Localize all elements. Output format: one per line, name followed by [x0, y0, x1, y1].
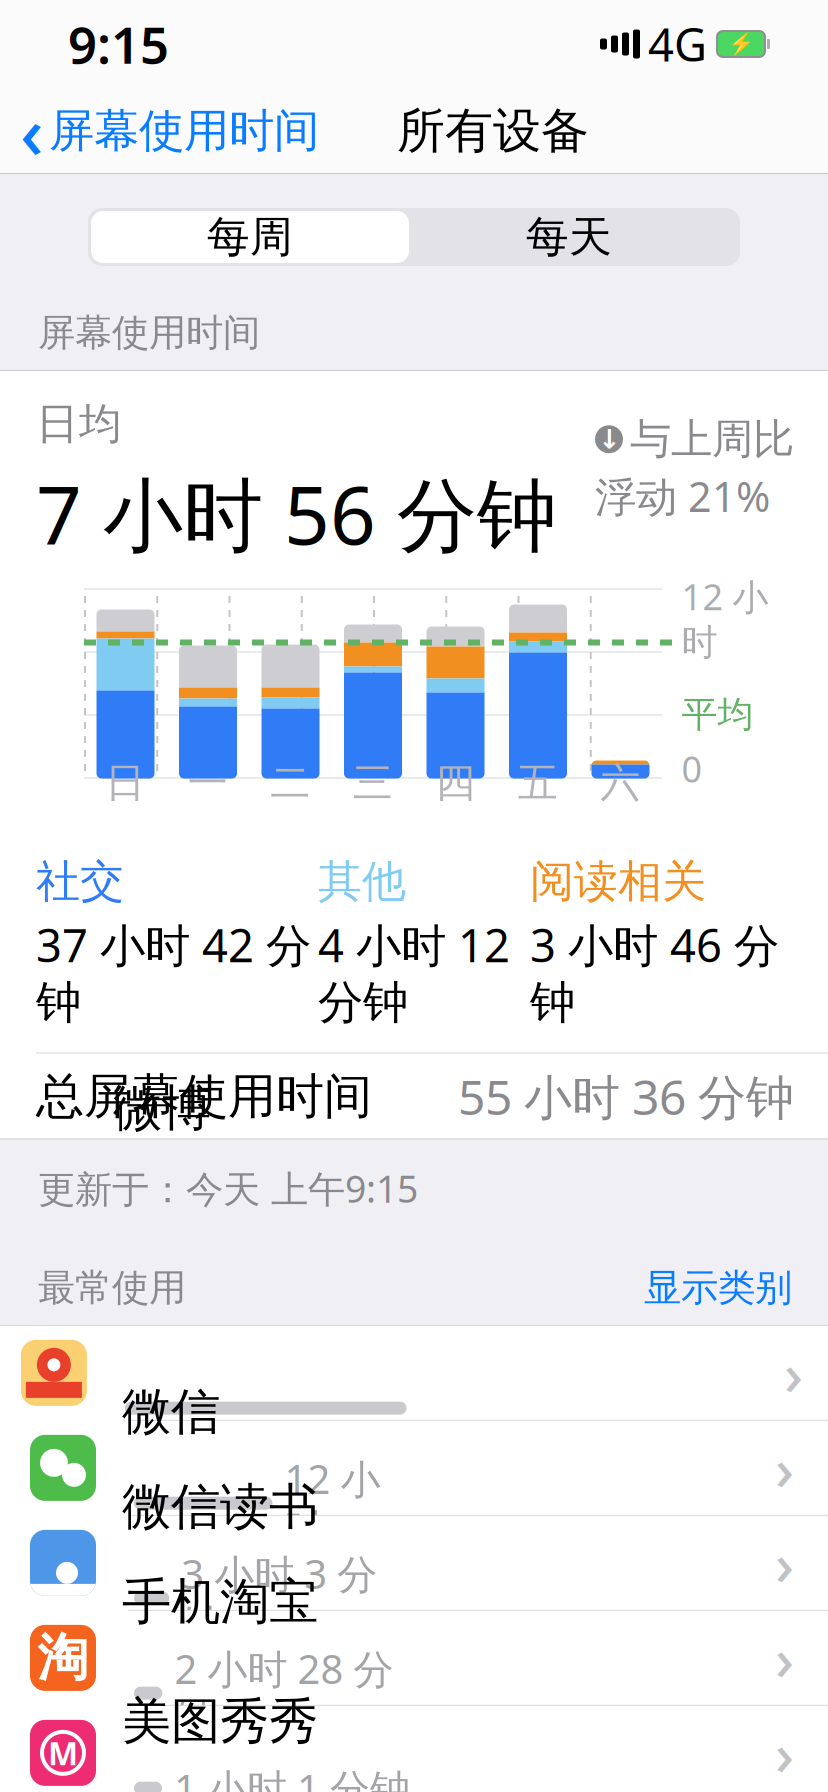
button[interactable]: 微信读书: [0, 1516, 828, 1611]
staticText: ↓: [598, 424, 620, 454]
staticText: 7 小时 56 分钟: [36, 460, 557, 566]
staticText: 每周: [207, 211, 293, 263]
staticText: 0: [681, 745, 702, 792]
button[interactable]: 微博: [0, 1326, 828, 1421]
staticText: 显示类别: [644, 1265, 792, 1311]
staticText: 淘: [37, 1627, 88, 1689]
staticText: 三: [353, 758, 393, 807]
staticText: 阅读相关: [530, 854, 706, 908]
staticText: 浮动 21%: [595, 469, 770, 523]
staticText: 一: [188, 758, 228, 807]
staticText: 4 小时 12 分钟: [318, 914, 510, 1030]
staticText: 所有设备: [397, 101, 589, 160]
staticText: 4G: [648, 14, 707, 74]
staticText: ›: [775, 1524, 794, 1602]
staticText: 与上周比: [630, 414, 794, 465]
staticText: 六: [600, 758, 640, 807]
staticText: 9:15: [68, 10, 169, 78]
staticText: 37 小时 42 分钟: [36, 914, 311, 1030]
staticText: 更新于：今天 上午9:15: [38, 1163, 418, 1213]
staticText: 五: [518, 758, 558, 807]
staticText: 二: [270, 758, 310, 807]
staticText: 日: [105, 758, 145, 807]
button[interactable]: 淘: [0, 1611, 828, 1706]
staticText: 微信读书: [122, 1476, 318, 1537]
staticText: 手机淘宝: [122, 1571, 318, 1632]
staticText: 平均: [681, 692, 753, 737]
staticText: 屏幕使用时间: [38, 310, 260, 356]
staticText: 12 小时: [681, 572, 768, 664]
staticText: M: [48, 1732, 78, 1774]
button[interactable]: 显示类别: [644, 1265, 792, 1311]
staticText: 最常使用: [38, 1265, 186, 1311]
staticText: 2 小时 28 分钟: [174, 1642, 393, 1744]
staticText: UC 浏览器: [122, 1783, 349, 1792]
staticText: ›: [775, 1619, 794, 1697]
staticText: ›: [775, 1714, 794, 1792]
button[interactable]: M: [0, 1706, 828, 1792]
staticText: ›: [775, 1429, 794, 1507]
staticText: 每天: [526, 211, 612, 263]
staticText: 微博: [113, 1078, 211, 1139]
staticText: 社交: [36, 854, 124, 908]
button[interactable]: 每周: [91, 211, 409, 263]
button[interactable]: 每天: [409, 211, 729, 263]
staticText: 美图秀秀: [122, 1691, 318, 1752]
button[interactable]: 微信: [0, 1421, 828, 1516]
staticText: 日均: [36, 398, 122, 450]
staticText: 其他: [318, 854, 406, 908]
staticText: 四: [435, 758, 475, 807]
staticText: ‹: [20, 83, 43, 179]
staticText: 12 小时: [284, 1452, 380, 1554]
staticText: 3 小时 3 分钟: [181, 1547, 377, 1649]
staticText: ⚡: [727, 32, 754, 56]
staticText: 3 小时 46 分钟: [530, 914, 779, 1030]
staticText: ›: [784, 1334, 803, 1412]
staticText: 55 小时 36 分钟: [458, 1065, 794, 1128]
button[interactable]: ‹: [0, 88, 331, 174]
staticText: 屏幕使用时间: [49, 103, 319, 159]
staticText: 1 小时 1 分钟: [174, 1762, 410, 1792]
staticText: 微信: [122, 1381, 220, 1442]
staticText: 总屏幕使用时间: [36, 1067, 372, 1126]
